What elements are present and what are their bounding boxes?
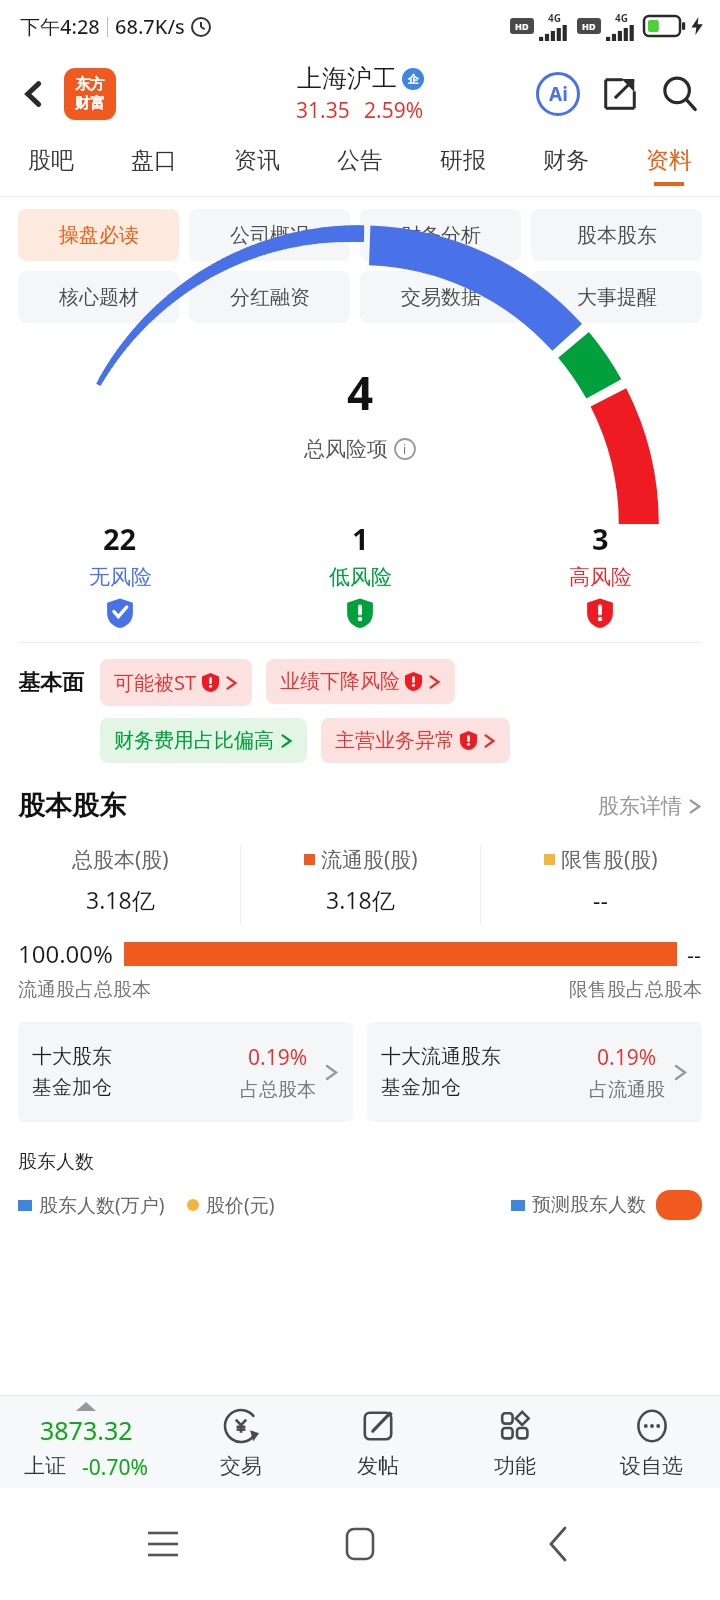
staticText: 100.00% (18, 937, 114, 970)
staticText: 研报 (440, 146, 486, 175)
staticText: 总风险项 (304, 436, 388, 462)
button[interactable]: 资料 (617, 136, 720, 196)
button[interactable]: 22 (0, 519, 240, 628)
staticText: 财务 (543, 146, 589, 175)
button[interactable]: Back (523, 1509, 593, 1579)
button[interactable]: 股东详情 (598, 793, 702, 819)
staticText: 下午4:28 (20, 13, 100, 40)
staticText: 公司概况 (230, 223, 310, 248)
button[interactable]: 十大股东 (18, 1022, 353, 1122)
staticText: 限售股占总股本 (569, 978, 702, 1002)
staticText: 股本股东 (18, 789, 126, 823)
staticText: 2.59% (364, 96, 424, 125)
button[interactable]: 3873.32 (0, 1402, 172, 1482)
button[interactable]: 业绩下降风险 (266, 659, 455, 704)
staticText: -- (593, 884, 608, 915)
button[interactable]: 股吧 (0, 136, 102, 196)
button[interactable]: 核心题材 (18, 271, 179, 323)
staticText: 基金加仓 (381, 1075, 461, 1100)
staticText: 功能 (494, 1453, 536, 1479)
button[interactable]: 可能被ST (100, 659, 252, 706)
button[interactable]: 公告 (308, 136, 411, 196)
button[interactable]: Share (594, 68, 646, 120)
staticText: 基金加仓 (32, 1075, 112, 1100)
staticText: 盘口 (131, 146, 177, 175)
staticText: 股东详情 (598, 793, 682, 819)
staticText: 股本股东 (577, 223, 657, 248)
staticText: 3 (592, 519, 609, 558)
staticText: 业绩下降风险 (280, 669, 400, 694)
button[interactable]: 资讯 (205, 136, 308, 196)
staticText: 上证 (24, 1453, 66, 1479)
button[interactable]: 交易 (172, 1406, 309, 1479)
staticText: 预测股东人数 (532, 1193, 646, 1217)
staticText: 4G (615, 11, 628, 25)
button[interactable]: 财务 (514, 136, 617, 196)
button[interactable]: 大事提醒 (531, 271, 702, 323)
staticText: 总股本(股) (72, 845, 169, 874)
staticText: HD (515, 20, 529, 32)
staticText: 分红融资 (230, 285, 310, 310)
button[interactable]: 分红融资 (189, 271, 350, 323)
button[interactable]: 交易数据 (360, 271, 521, 323)
staticText: 核心题材 (59, 285, 139, 310)
button[interactable]: 股本股东 (531, 209, 702, 261)
button[interactable]: 研报 (411, 136, 514, 196)
staticText: 基本面 (18, 669, 84, 697)
staticText: 企 (408, 72, 419, 86)
button[interactable]: 盘口 (102, 136, 205, 196)
button[interactable]: Recents (128, 1509, 198, 1579)
staticText: 占流通股 (589, 1078, 665, 1102)
staticText: 股价(元) (206, 1192, 275, 1218)
staticText: 财富 (75, 94, 105, 113)
staticText: 0.19% (597, 1043, 657, 1072)
staticText: 上海沪工 (297, 63, 397, 94)
staticText: 1 (352, 519, 369, 558)
button[interactable]: 财务分析 (360, 209, 521, 261)
button[interactable]: 财务费用占比偏高 (100, 718, 307, 763)
staticText: 流通股(股) (321, 845, 418, 874)
button[interactable]: 公司概况 (189, 209, 350, 261)
staticText: 交易 (220, 1453, 262, 1479)
button[interactable]: 操盘必读 (18, 209, 179, 261)
button[interactable]: 发帖 (309, 1406, 446, 1479)
button[interactable]: 十大流通股东 (367, 1022, 702, 1122)
staticText: 大事提醒 (577, 285, 657, 310)
staticText: 可能被ST (114, 669, 197, 696)
staticText: 68.7K/s (115, 13, 185, 40)
button[interactable]: 东方 (64, 68, 116, 120)
staticText: i (403, 441, 407, 457)
staticText: 资讯 (234, 146, 280, 175)
button[interactable]: 主营业务异常 (321, 718, 510, 763)
staticText: 资料 (646, 146, 692, 175)
staticText: 3.18亿 (86, 884, 155, 915)
staticText: 交易数据 (401, 285, 481, 310)
staticText: 设自选 (620, 1453, 683, 1479)
button[interactable]: Back (10, 70, 58, 118)
staticText: 发帖 (357, 1453, 399, 1479)
staticText: 操盘必读 (59, 223, 139, 248)
button[interactable]: 3 (480, 519, 720, 628)
staticText: 3873.32 (40, 1413, 133, 1447)
staticText: Ai (549, 81, 568, 107)
staticText: 财务费用占比偏高 (114, 728, 274, 753)
staticText: 31.35 (296, 96, 350, 125)
button[interactable]: Home (325, 1509, 395, 1579)
staticText: 财务分析 (401, 223, 481, 248)
staticText: 十大股东 (32, 1044, 112, 1069)
staticText: 股东人数 (18, 1150, 94, 1174)
staticText: 限售股(股) (561, 845, 658, 874)
button[interactable]: Search (654, 68, 706, 120)
staticText: 4G (548, 11, 561, 25)
staticText: HD (582, 20, 596, 32)
staticText: 十大流通股东 (381, 1044, 501, 1069)
button[interactable]: 功能 (446, 1406, 583, 1479)
staticText: 3.18亿 (326, 884, 395, 915)
button[interactable]: 设自选 (583, 1406, 720, 1479)
button[interactable]: AI (532, 68, 584, 120)
staticText: 4 (347, 361, 374, 424)
button[interactable]: 1 (240, 519, 480, 628)
staticText: -0.70% (82, 1453, 148, 1482)
button[interactable]: Info (394, 438, 416, 460)
staticText: 低风险 (329, 564, 392, 590)
